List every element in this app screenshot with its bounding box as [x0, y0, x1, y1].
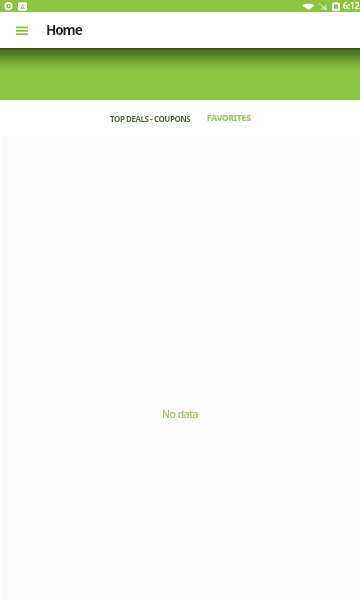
button[interactable]: FAVORITES [199, 100, 259, 136]
staticText: 6:12 [343, 0, 360, 12]
staticText: TOP DEALS - COUPONS [110, 113, 191, 124]
button[interactable]: TOP DEALS - COUPONS [102, 100, 199, 136]
button[interactable]: Open navigation menu [10, 18, 34, 42]
staticText: Home [46, 21, 82, 39]
staticText: No data [162, 407, 198, 421]
staticText: FAVORITES [207, 112, 251, 124]
